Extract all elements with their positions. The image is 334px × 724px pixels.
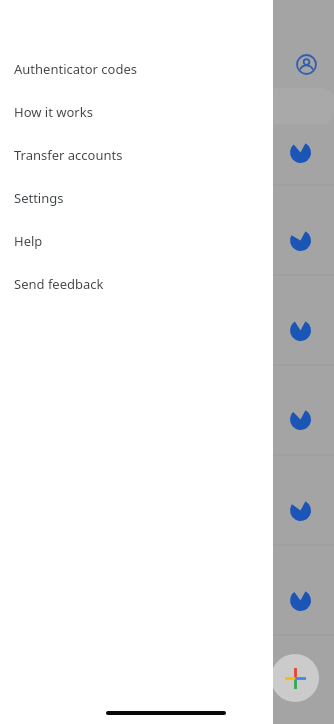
button[interactable]: Add account [271, 654, 319, 702]
staticText: How it works [14, 103, 93, 121]
button[interactable]: Transfer accounts [0, 133, 273, 176]
staticText: Help [14, 232, 43, 250]
staticText: Settings [14, 189, 64, 207]
staticText: Send feedback [14, 275, 104, 293]
button[interactable]: Settings [0, 176, 273, 219]
button[interactable]: Help [0, 219, 273, 262]
button[interactable]: Account [288, 46, 324, 82]
button[interactable]: Authenticator codes [0, 47, 273, 90]
button[interactable]: How it works [0, 90, 273, 133]
staticText: Authenticator codes [14, 60, 137, 78]
staticText: Transfer accounts [14, 146, 123, 164]
button[interactable]: Send feedback [0, 262, 273, 305]
